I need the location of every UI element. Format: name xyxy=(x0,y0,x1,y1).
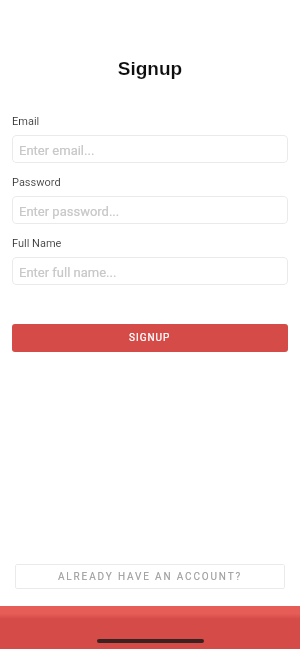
button[interactable]: Enter email... xyxy=(12,135,288,163)
button[interactable]: ALREADY HAVE AN ACCOUNT? xyxy=(15,564,285,589)
staticText: Email xyxy=(12,115,40,128)
staticText: Password xyxy=(12,176,61,189)
button[interactable]: Home xyxy=(0,606,300,649)
button[interactable]: Enter password... xyxy=(12,196,288,224)
button[interactable]: Enter full name... xyxy=(12,257,288,285)
staticText: ALREADY HAVE AN ACCOUNT? xyxy=(58,571,243,583)
staticText: SIGNUP xyxy=(129,332,171,344)
staticText: Enter password... xyxy=(19,204,120,219)
button[interactable]: SIGNUP xyxy=(12,324,288,352)
staticText: Enter full name... xyxy=(19,265,117,280)
staticText: Enter email... xyxy=(19,143,95,158)
staticText: Signup xyxy=(0,58,300,79)
staticText: Full Name xyxy=(12,237,62,250)
